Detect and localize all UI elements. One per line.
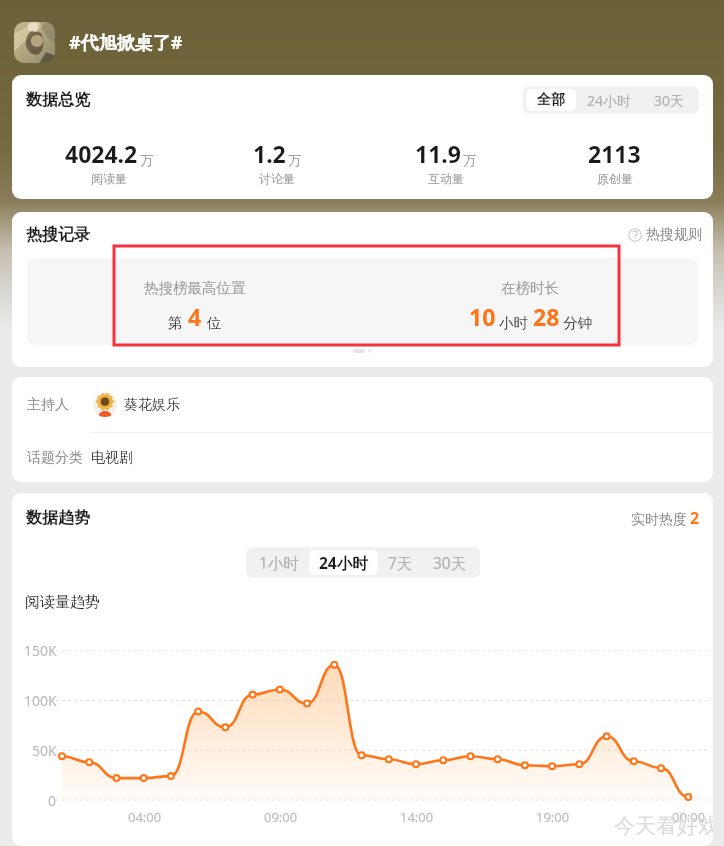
button[interactable]: 热搜规则 [628, 226, 702, 244]
staticText: 0 [48, 791, 57, 809]
staticText: 今天看好戏 [614, 813, 713, 839]
staticText: 话题分类 [27, 449, 83, 467]
staticText: 30天 [433, 552, 467, 573]
staticText: 主持人 [27, 396, 69, 414]
staticText: 热搜规则 [646, 226, 702, 244]
staticText: 19:00 [536, 808, 570, 826]
staticText: 50K [32, 741, 57, 759]
staticText: 阅读量 [91, 171, 127, 186]
staticText: 小时 [499, 314, 528, 332]
staticText: 数据趋势 [26, 508, 90, 528]
staticText: 7天 [388, 552, 413, 573]
staticText: 00:00 [672, 808, 706, 826]
staticText: 24小时 [319, 552, 368, 573]
staticText: 在榜时长 [501, 279, 559, 297]
staticText: 09:00 [264, 808, 298, 826]
staticText: 原创量 [597, 171, 633, 186]
staticText: 10 [469, 301, 496, 332]
staticText: 4024.2 [65, 138, 138, 169]
staticText: 葵花娱乐 [124, 396, 180, 414]
staticText: 1.2 [253, 138, 286, 169]
staticText: 第 [168, 314, 183, 332]
staticText: 数据总览 [26, 90, 90, 110]
button[interactable]: 24小时 [576, 89, 643, 111]
button[interactable]: 24小时 [309, 550, 378, 575]
staticText: 2 [690, 507, 700, 529]
staticText: 讨论量 [259, 171, 295, 186]
button[interactable]: 7天 [378, 550, 423, 575]
staticText: 分钟 [563, 314, 592, 332]
staticText: 位 [207, 314, 222, 332]
staticText: 全部 [537, 91, 565, 109]
button[interactable]: 全部 [526, 89, 576, 111]
staticText: 28 [533, 301, 560, 332]
staticText: 万 [288, 152, 301, 168]
staticText: 热搜记录 [26, 225, 90, 245]
staticText: 150K [24, 641, 57, 659]
staticText: 热搜榜最高位置 [144, 279, 246, 297]
staticText: 实时热度 [631, 511, 687, 529]
staticText: 电视剧 [91, 449, 133, 467]
staticText: 14:00 [400, 808, 434, 826]
staticText: 2113 [588, 138, 641, 169]
staticText: #代旭掀桌了# [69, 30, 183, 55]
staticText: 24小时 [587, 91, 632, 110]
staticText: 万 [463, 152, 476, 168]
button[interactable]: 30天 [423, 550, 477, 575]
staticText: 04:00 [128, 808, 162, 826]
button[interactable]: 实时热度 [631, 507, 700, 529]
staticText: 1小时 [259, 552, 299, 573]
staticText: 11.9 [415, 138, 461, 169]
button[interactable]: 1小时 [249, 550, 309, 575]
staticText: 4 [188, 301, 202, 332]
staticText: 万 [140, 152, 153, 168]
staticText: 100K [24, 691, 57, 709]
staticText: 30天 [654, 91, 685, 110]
staticText: 阅读量趋势 [25, 593, 100, 612]
button[interactable]: 30天 [643, 89, 696, 111]
staticText: 互动量 [428, 171, 464, 186]
